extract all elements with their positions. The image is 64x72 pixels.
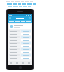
button[interactable]: Home [8, 61, 14, 65]
button[interactable] [9, 57, 31, 59]
button[interactable]: Menu [9, 17, 11, 19]
button[interactable] [9, 39, 31, 41]
button[interactable] [9, 30, 31, 32]
button[interactable] [9, 51, 31, 53]
button[interactable] [9, 33, 31, 35]
button[interactable]: List [14, 61, 20, 65]
button[interactable] [9, 42, 31, 44]
button[interactable] [9, 48, 31, 50]
button[interactable]: Home [19, 66, 22, 69]
button[interactable]: Profile [26, 61, 32, 65]
button[interactable] [9, 45, 31, 47]
button[interactable] [10, 24, 30, 29]
button[interactable] [9, 54, 31, 56]
button[interactable] [9, 36, 31, 38]
button[interactable]: Add [20, 61, 26, 65]
button[interactable]: Search [29, 17, 31, 19]
